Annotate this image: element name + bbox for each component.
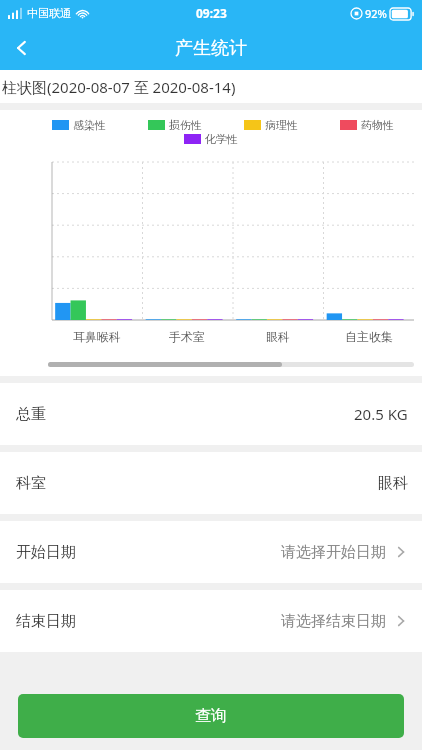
button[interactable]: 开始日期 <box>0 521 422 583</box>
staticText: 请选择开始日期 <box>281 543 386 562</box>
staticText: 总重 <box>16 405 46 424</box>
staticText: 结束日期 <box>16 612 76 631</box>
staticText: 药物性 <box>361 118 394 132</box>
staticText: 病理性 <box>265 118 298 132</box>
button[interactable]: Back <box>0 26 44 70</box>
staticText: 眼科 <box>266 329 290 344</box>
staticText: 09:23 <box>196 5 227 21</box>
staticText: 手术室 <box>169 329 205 344</box>
staticText: 柱状图(2020-08-07 至 2020-08-14) <box>2 77 236 97</box>
staticText: 开始日期 <box>16 543 76 562</box>
staticText: 耳鼻喉科 <box>73 329 121 344</box>
staticText: 科室 <box>16 474 46 493</box>
staticText: 20.5 KG <box>354 404 408 424</box>
staticText: 产生统计 <box>175 37 247 60</box>
button[interactable]: 科室 <box>0 452 422 514</box>
staticText: 感染性 <box>73 118 106 132</box>
staticText: 查询 <box>195 706 227 726</box>
staticText: 化学性 <box>205 132 238 146</box>
button[interactable]: 结束日期 <box>0 590 422 652</box>
staticText: 眼科 <box>378 474 408 493</box>
button[interactable]: 总重 <box>0 383 422 445</box>
staticText: 请选择结束日期 <box>281 612 386 631</box>
staticText: 92% <box>365 6 387 21</box>
staticText: 自主收集 <box>345 329 393 344</box>
staticText: 中国联通 <box>27 6 71 20</box>
staticText: 损伤性 <box>169 118 202 132</box>
button[interactable]: 查询 <box>18 694 404 738</box>
